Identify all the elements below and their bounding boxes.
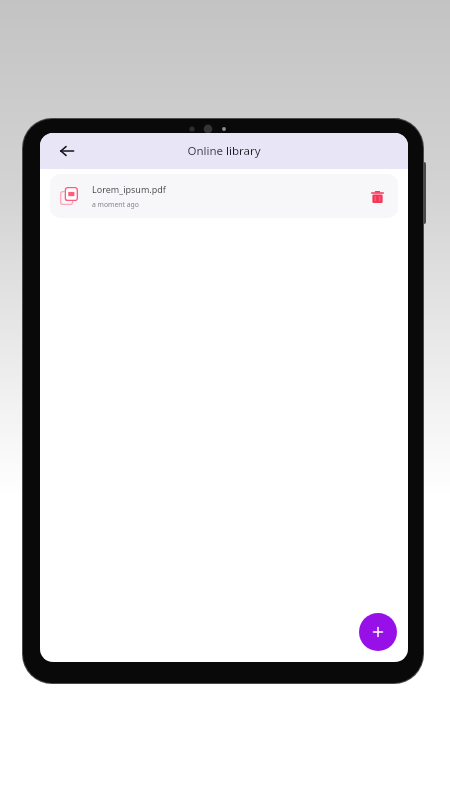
button[interactable]: Delete xyxy=(366,185,388,207)
button[interactable]: Back xyxy=(56,140,78,162)
staticText: Lorem_ipsum.pdf xyxy=(92,183,166,195)
staticText: a moment ago xyxy=(92,200,139,209)
button[interactable]: Add file xyxy=(359,613,397,651)
button[interactable]: Lorem_ipsum.pdf xyxy=(50,174,398,218)
staticText: Online library xyxy=(187,143,261,159)
